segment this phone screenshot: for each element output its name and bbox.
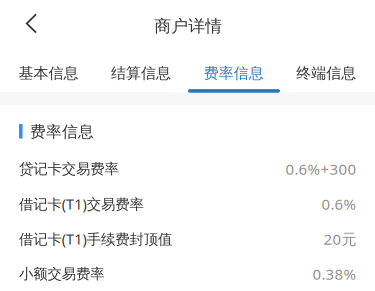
staticText: 0.38% (312, 264, 356, 284)
button[interactable]: 费率信息 (187, 50, 280, 92)
button[interactable]: 终端信息 (280, 50, 373, 92)
staticText: 费率信息 (204, 64, 264, 83)
staticText: 0.6%+300 (285, 159, 356, 179)
staticText: 商户详情 (154, 16, 222, 37)
staticText: 费率信息 (30, 122, 94, 142)
staticText: 小额交易费率 (19, 265, 104, 283)
staticText: 基本信息 (18, 64, 78, 83)
staticText: 结算信息 (111, 64, 171, 83)
staticText: 贷记卡交易费率 (19, 160, 118, 178)
button[interactable]: 基本信息 (2, 50, 95, 92)
button[interactable]: Back (0, 3, 52, 47)
staticText: 0.6% (321, 194, 356, 214)
staticText: 借记卡(T1)手续费封顶值 (19, 229, 172, 249)
staticText: 借记卡(T1)交易费率 (19, 194, 143, 214)
staticText: 20元 (323, 229, 356, 249)
staticText: 终端信息 (296, 64, 356, 83)
button[interactable]: 结算信息 (95, 50, 187, 92)
